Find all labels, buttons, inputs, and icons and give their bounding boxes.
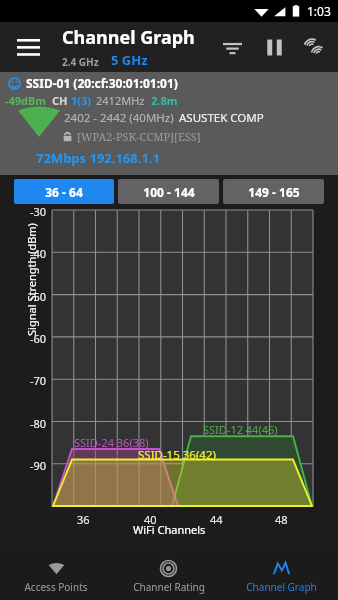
button[interactable]: 2.4 GHz <box>62 55 99 69</box>
staticText: Access Points <box>24 580 88 594</box>
button[interactable]: 5 GHz <box>111 51 148 69</box>
staticText: -49dBm <box>5 93 47 108</box>
staticText: 40 <box>144 512 157 527</box>
button[interactable]: Filter <box>211 26 253 68</box>
staticText: -30 <box>30 204 47 219</box>
staticText: -80 <box>30 416 47 431</box>
staticText: 2.4 GHz <box>62 55 99 69</box>
button[interactable]: 149 - 165 <box>223 179 324 204</box>
staticText: SSID-12 44(46) <box>203 422 278 437</box>
staticText: Channel Rating <box>133 580 205 594</box>
staticText: Channel Graph <box>62 25 195 50</box>
staticText: CH <box>52 93 68 108</box>
staticText: -50 <box>30 289 47 304</box>
staticText: 1(3) <box>71 93 92 108</box>
staticText: 2402 - 2442 (40MHz) <box>64 110 174 126</box>
staticText: Channel Graph <box>246 580 317 594</box>
staticText: SSID-24 36(38) <box>74 435 149 450</box>
staticText: WiFi Channels <box>133 522 206 537</box>
staticText: -90 <box>30 458 47 473</box>
button[interactable]: Access Points <box>0 554 112 600</box>
staticText: 149 - 165 <box>248 184 300 200</box>
staticText: 2412MHz <box>96 93 145 108</box>
staticText: 44 <box>210 512 223 527</box>
staticText: 36 - 64 <box>45 184 83 200</box>
staticText: -70 <box>30 373 47 388</box>
button[interactable]: Channel Graph <box>225 554 338 600</box>
staticText: SSID-15 36(42) <box>138 447 216 463</box>
staticText: ASUSTEK COMP <box>179 110 264 126</box>
button[interactable]: WiFi scan <box>295 26 337 68</box>
staticText: 1:03 <box>307 3 331 19</box>
button[interactable]: SSID-01 (20:cf:30:01:01:01) <box>0 72 338 175</box>
button[interactable]: Open navigation drawer <box>6 25 50 69</box>
staticText: 36 <box>77 512 90 527</box>
staticText: [WPA2-PSK-CCMP][ESS] <box>77 129 201 144</box>
staticText: 100 - 144 <box>143 184 195 200</box>
button[interactable]: 36 - 64 <box>14 179 114 204</box>
staticText: 48 <box>275 512 288 527</box>
staticText: -40 <box>30 246 47 261</box>
staticText: SSID-01 (20:cf:30:01:01:01) <box>26 75 178 91</box>
staticText: -60 <box>30 331 47 346</box>
staticText: 2.8m <box>151 93 178 108</box>
staticText: 72Mbps 192.168.1.1 <box>36 149 160 167</box>
button[interactable]: 100 - 144 <box>118 179 219 204</box>
button[interactable]: Channel Rating <box>112 554 225 600</box>
staticText: Signal Strength (dBm) <box>23 209 38 349</box>
button[interactable]: Pause scanning <box>253 26 295 68</box>
staticText: 5 GHz <box>111 51 148 69</box>
